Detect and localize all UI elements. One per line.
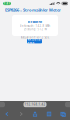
- button[interactable]: Tabs: [56, 108, 70, 120]
- staticText: Aktualisieren: [27, 38, 41, 45]
- button[interactable]: 192.168.1.42: [23, 102, 46, 107]
- staticText: Messwerte: [27, 20, 42, 24]
- staticText: Leistung: 512 W: [23, 27, 46, 31]
- staticText: Aktualisiert vor 2 Sek.: [20, 36, 49, 39]
- button[interactable]: Aktualisieren: [27, 39, 42, 43]
- staticText: ESP8266 – Stromzähler Meter: [5, 7, 61, 13]
- button[interactable]: Bookmarks: [42, 108, 56, 120]
- staticText: 192.168.1.42: [24, 103, 45, 106]
- button[interactable]: Back: [0, 108, 14, 120]
- staticText: 9:41: [3, 2, 10, 5]
- button[interactable]: Share: [28, 108, 42, 120]
- staticText: Verbrauch: 142.8 kWh: [19, 24, 50, 28]
- button[interactable]: Previous tab: [0, 102, 8, 107]
- button[interactable]: Forward: [14, 108, 28, 120]
- button[interactable]: Next tab: [62, 102, 70, 107]
